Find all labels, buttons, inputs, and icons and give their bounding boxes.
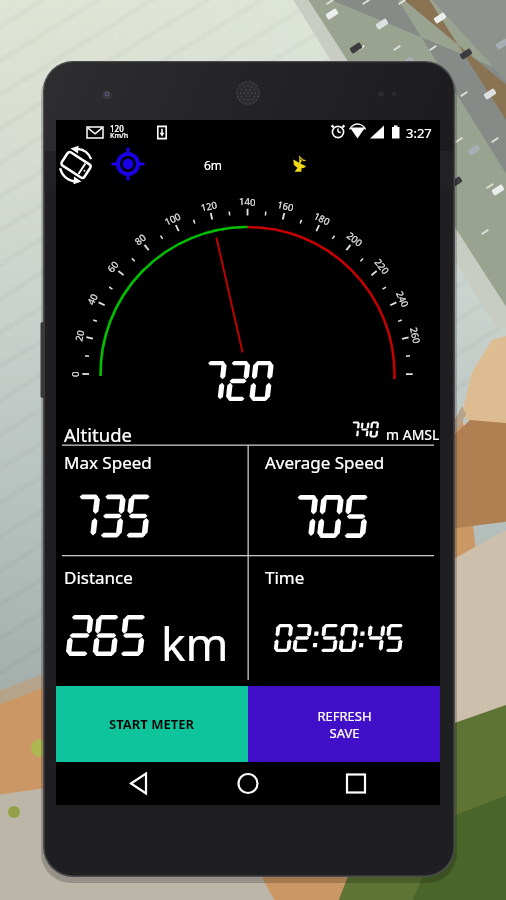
button[interactable]: REFRESH SAVE — [248, 686, 440, 762]
button[interactable]: Back — [116, 762, 160, 805]
button[interactable]: Satellite status — [283, 148, 319, 184]
button[interactable]: START METER — [56, 686, 248, 762]
staticText: Average Speed — [265, 451, 385, 474]
button[interactable]: Rotate screen — [58, 148, 94, 184]
staticText: Time — [265, 566, 305, 589]
staticText: Km/h — [110, 131, 129, 141]
button[interactable]: Recent apps — [334, 762, 378, 805]
staticText: 3:27 — [406, 124, 432, 142]
staticText: START METER — [109, 715, 195, 733]
staticText: m AMSL — [386, 425, 440, 444]
staticText: Distance — [64, 566, 133, 589]
staticText: REFRESH SAVE — [317, 707, 372, 742]
staticText: Altitude — [64, 422, 132, 447]
staticText: Max Speed — [64, 451, 152, 474]
button[interactable]: GPS lock — [110, 148, 146, 184]
staticText: 120 — [110, 123, 124, 134]
staticText: km — [161, 612, 229, 675]
button[interactable]: Home — [226, 762, 270, 805]
staticText: 6m — [204, 157, 223, 173]
